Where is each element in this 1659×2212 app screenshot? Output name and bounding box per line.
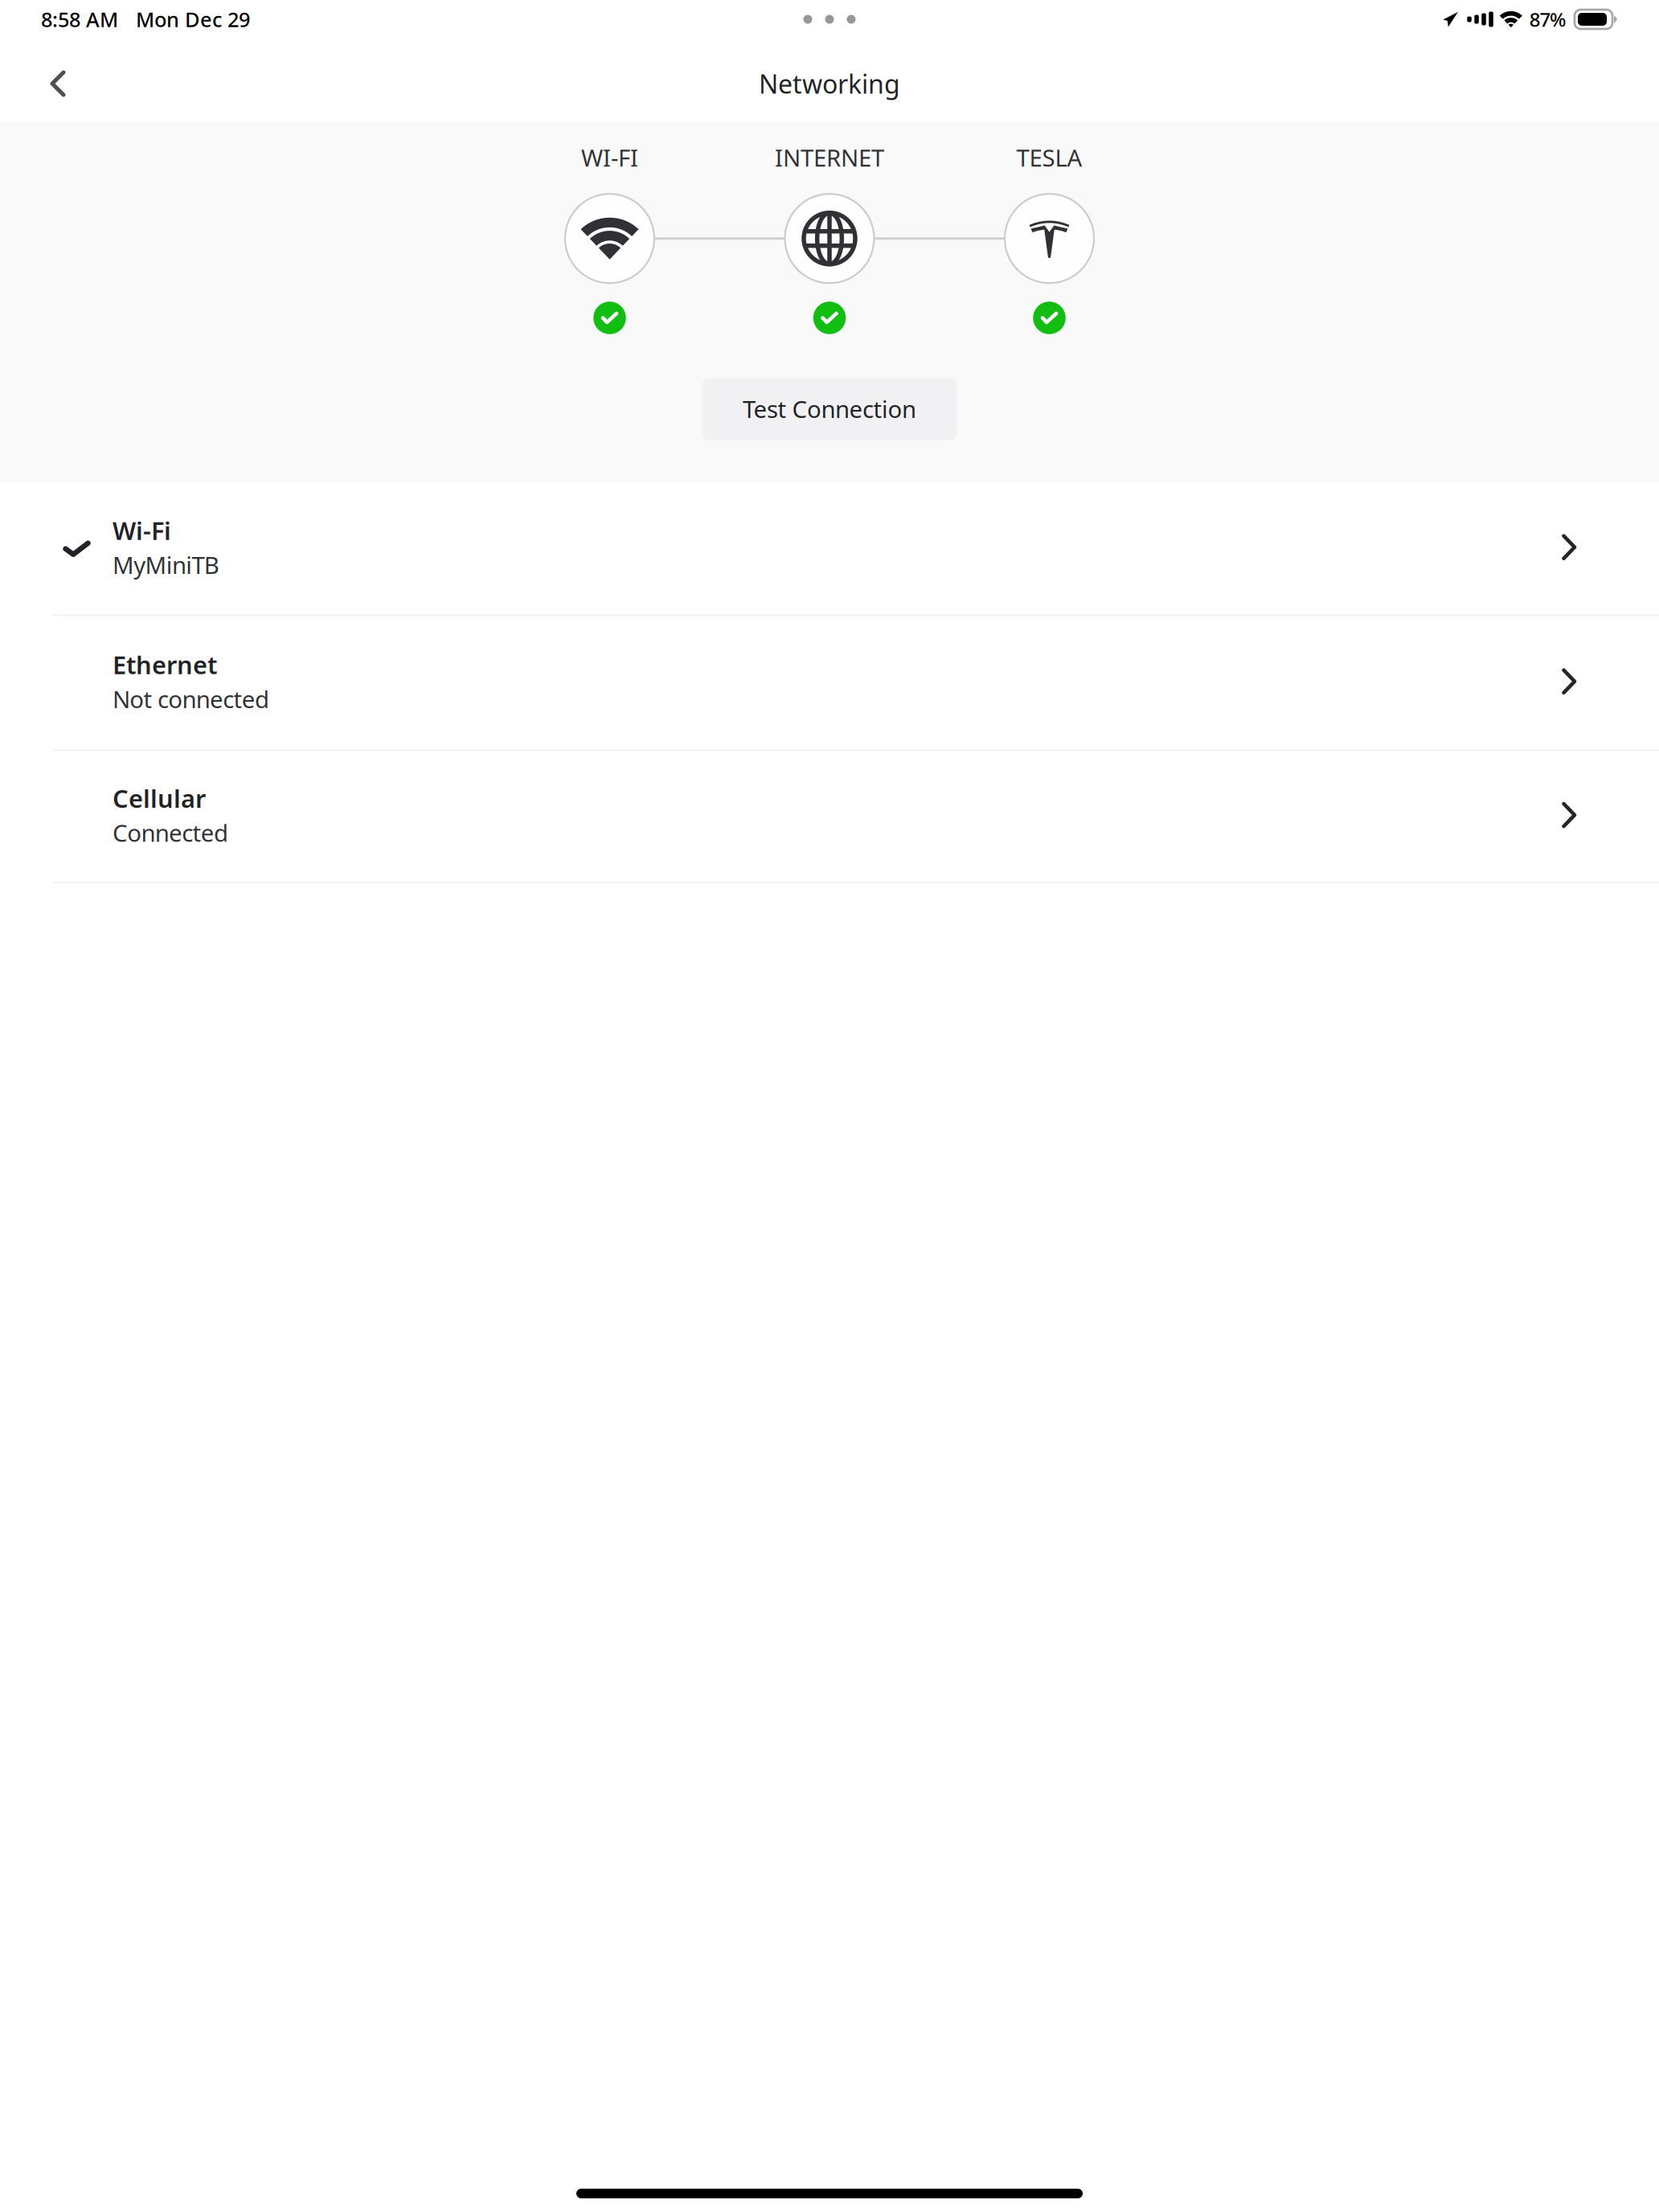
staticText: INTERNET bbox=[775, 142, 884, 173]
staticText: Wi-Fi bbox=[113, 514, 171, 547]
button[interactable]: Cellular bbox=[0, 751, 1659, 883]
staticText: 87% bbox=[1529, 7, 1566, 32]
button[interactable]: Back bbox=[28, 51, 88, 116]
staticText: Ethernet bbox=[113, 648, 217, 681]
staticText: WI-FI bbox=[581, 142, 638, 173]
staticText: MyMiniTB bbox=[113, 549, 219, 580]
staticText: Cellular bbox=[113, 782, 206, 815]
staticText: Test Connection bbox=[743, 393, 916, 425]
staticText: TESLA bbox=[1016, 142, 1082, 173]
button[interactable]: Wi-Fi bbox=[0, 482, 1659, 616]
button[interactable]: Test Connection bbox=[702, 378, 957, 440]
button[interactable]: Ethernet bbox=[0, 616, 1659, 751]
staticText: 8:58 AM bbox=[41, 6, 118, 33]
staticText: Not connected bbox=[113, 683, 269, 715]
staticText: Networking bbox=[759, 67, 900, 101]
staticText: Connected bbox=[113, 817, 228, 848]
staticText: Mon Dec 29 bbox=[136, 6, 250, 33]
